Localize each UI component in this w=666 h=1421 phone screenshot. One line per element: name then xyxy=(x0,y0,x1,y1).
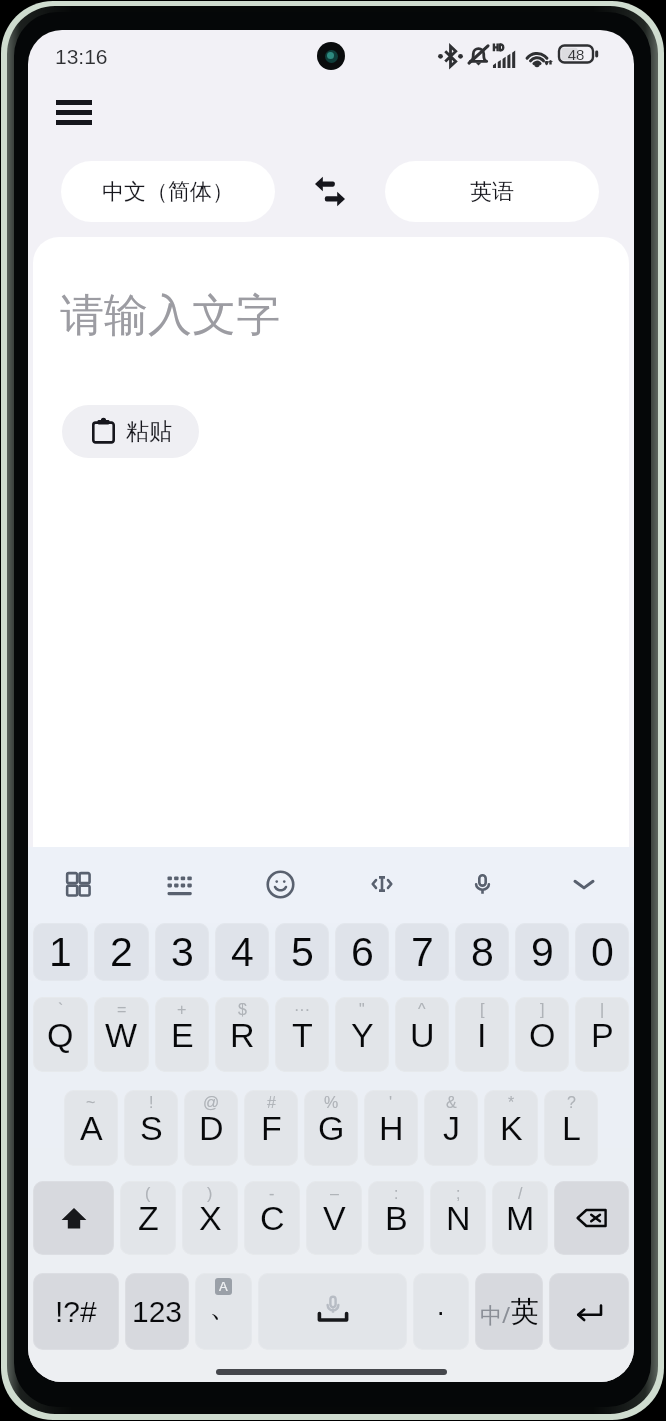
staticText: · xyxy=(436,1296,446,1327)
button[interactable] xyxy=(33,1181,114,1255)
button[interactable]: W xyxy=(94,997,149,1072)
staticText: : xyxy=(394,1185,399,1203)
button[interactable]: Menu xyxy=(48,86,100,138)
staticText: 1 xyxy=(49,929,72,975)
staticText: 2 xyxy=(110,929,133,975)
staticText: $ xyxy=(238,1001,247,1019)
staticText: Y xyxy=(351,1016,374,1054)
button[interactable]: Z xyxy=(120,1181,176,1255)
button[interactable]: G xyxy=(304,1090,358,1166)
staticText: U xyxy=(410,1016,435,1054)
button[interactable]: Hide keyboard xyxy=(533,847,634,923)
button[interactable]: N xyxy=(430,1181,486,1255)
staticText: [ xyxy=(480,1001,485,1019)
button[interactable]: Swap languages xyxy=(275,161,385,222)
button[interactable]: J xyxy=(424,1090,478,1166)
staticText: 7 xyxy=(411,929,434,975)
staticText: / xyxy=(518,1185,523,1203)
button[interactable]: S xyxy=(124,1090,178,1166)
button[interactable]: X xyxy=(182,1181,238,1255)
button[interactable]: E xyxy=(155,997,209,1072)
staticText: @ xyxy=(203,1094,220,1112)
button[interactable]: 中/ xyxy=(475,1273,543,1350)
staticText: ; xyxy=(456,1185,461,1203)
button[interactable]: 9 xyxy=(515,923,569,981)
staticText: 粘贴 xyxy=(126,417,172,446)
button[interactable] xyxy=(549,1273,629,1350)
staticText: & xyxy=(446,1094,457,1112)
button[interactable]: C xyxy=(244,1181,300,1255)
staticText: ? xyxy=(567,1094,576,1112)
staticText: ' xyxy=(389,1094,393,1112)
button[interactable]: H xyxy=(364,1090,418,1166)
staticText: E xyxy=(171,1016,194,1054)
staticText: F xyxy=(261,1109,282,1147)
button[interactable]: 4 xyxy=(215,923,269,981)
button[interactable]: 5 xyxy=(275,923,329,981)
button[interactable]: 3 xyxy=(155,923,209,981)
staticText: C xyxy=(260,1199,285,1237)
button[interactable]: 中文（简体） xyxy=(61,161,275,222)
staticText: 6 xyxy=(351,929,374,975)
staticText: ( xyxy=(145,1185,151,1203)
button[interactable]: K xyxy=(484,1090,538,1166)
button[interactable]: Voice input xyxy=(432,847,533,923)
button[interactable]: D xyxy=(184,1090,238,1166)
staticText: A xyxy=(219,1279,228,1294)
staticText: 3 xyxy=(171,929,194,975)
button[interactable]: Apps xyxy=(28,847,129,923)
button[interactable]: P xyxy=(575,997,629,1072)
staticText: H xyxy=(379,1109,404,1147)
button[interactable]: 7 xyxy=(395,923,449,981)
button[interactable] xyxy=(554,1181,629,1255)
button[interactable]: Move cursor xyxy=(331,847,432,923)
button[interactable]: 2 xyxy=(94,923,149,981)
button[interactable]: · xyxy=(413,1273,469,1350)
button[interactable]: 123 xyxy=(125,1273,189,1350)
staticText: S xyxy=(140,1109,163,1147)
button[interactable]: U xyxy=(395,997,449,1072)
button[interactable]: 8 xyxy=(455,923,509,981)
staticText: 英 xyxy=(511,1294,539,1329)
button[interactable]: M xyxy=(492,1181,548,1255)
staticText: 4 xyxy=(231,929,254,975)
staticText: A xyxy=(80,1109,103,1147)
staticText: !?# xyxy=(55,1295,97,1329)
button[interactable]: Q xyxy=(33,997,88,1072)
button[interactable]: O xyxy=(515,997,569,1072)
button[interactable]: 英语 xyxy=(385,161,599,222)
button[interactable]: 0 xyxy=(575,923,629,981)
button[interactable]: 粘贴 xyxy=(62,405,199,458)
staticText: N xyxy=(446,1199,471,1237)
staticText: – xyxy=(330,1185,339,1203)
staticText: O xyxy=(529,1016,556,1054)
button[interactable]: Keyboard layout xyxy=(129,847,230,923)
staticText: B xyxy=(385,1199,408,1237)
button[interactable]: T xyxy=(275,997,329,1072)
staticText: " xyxy=(359,1001,365,1019)
button[interactable]: !?# xyxy=(33,1273,119,1350)
button[interactable]: Y xyxy=(335,997,389,1072)
staticText: ~ xyxy=(86,1094,96,1112)
button[interactable] xyxy=(258,1273,407,1350)
staticText: ··· xyxy=(294,1001,310,1019)
button[interactable]: R xyxy=(215,997,269,1072)
button[interactable]: L xyxy=(544,1090,598,1166)
button[interactable]: V xyxy=(306,1181,362,1255)
staticText: Z xyxy=(138,1199,159,1237)
staticText: ) xyxy=(207,1185,213,1203)
staticText: 123 xyxy=(132,1295,183,1329)
button[interactable]: A xyxy=(64,1090,118,1166)
button[interactable]: 、 xyxy=(195,1273,252,1350)
staticText: R xyxy=(230,1016,255,1054)
button[interactable]: 6 xyxy=(335,923,389,981)
staticText: + xyxy=(177,1001,187,1019)
button[interactable]: F xyxy=(244,1090,298,1166)
staticText: ^ xyxy=(418,1001,426,1019)
button[interactable]: I xyxy=(455,997,509,1072)
button[interactable]: Emoji xyxy=(230,847,331,923)
button[interactable]: 1 xyxy=(33,923,88,981)
staticText: ` xyxy=(58,1001,64,1019)
staticText: ] xyxy=(540,1001,545,1019)
button[interactable]: B xyxy=(368,1181,424,1255)
